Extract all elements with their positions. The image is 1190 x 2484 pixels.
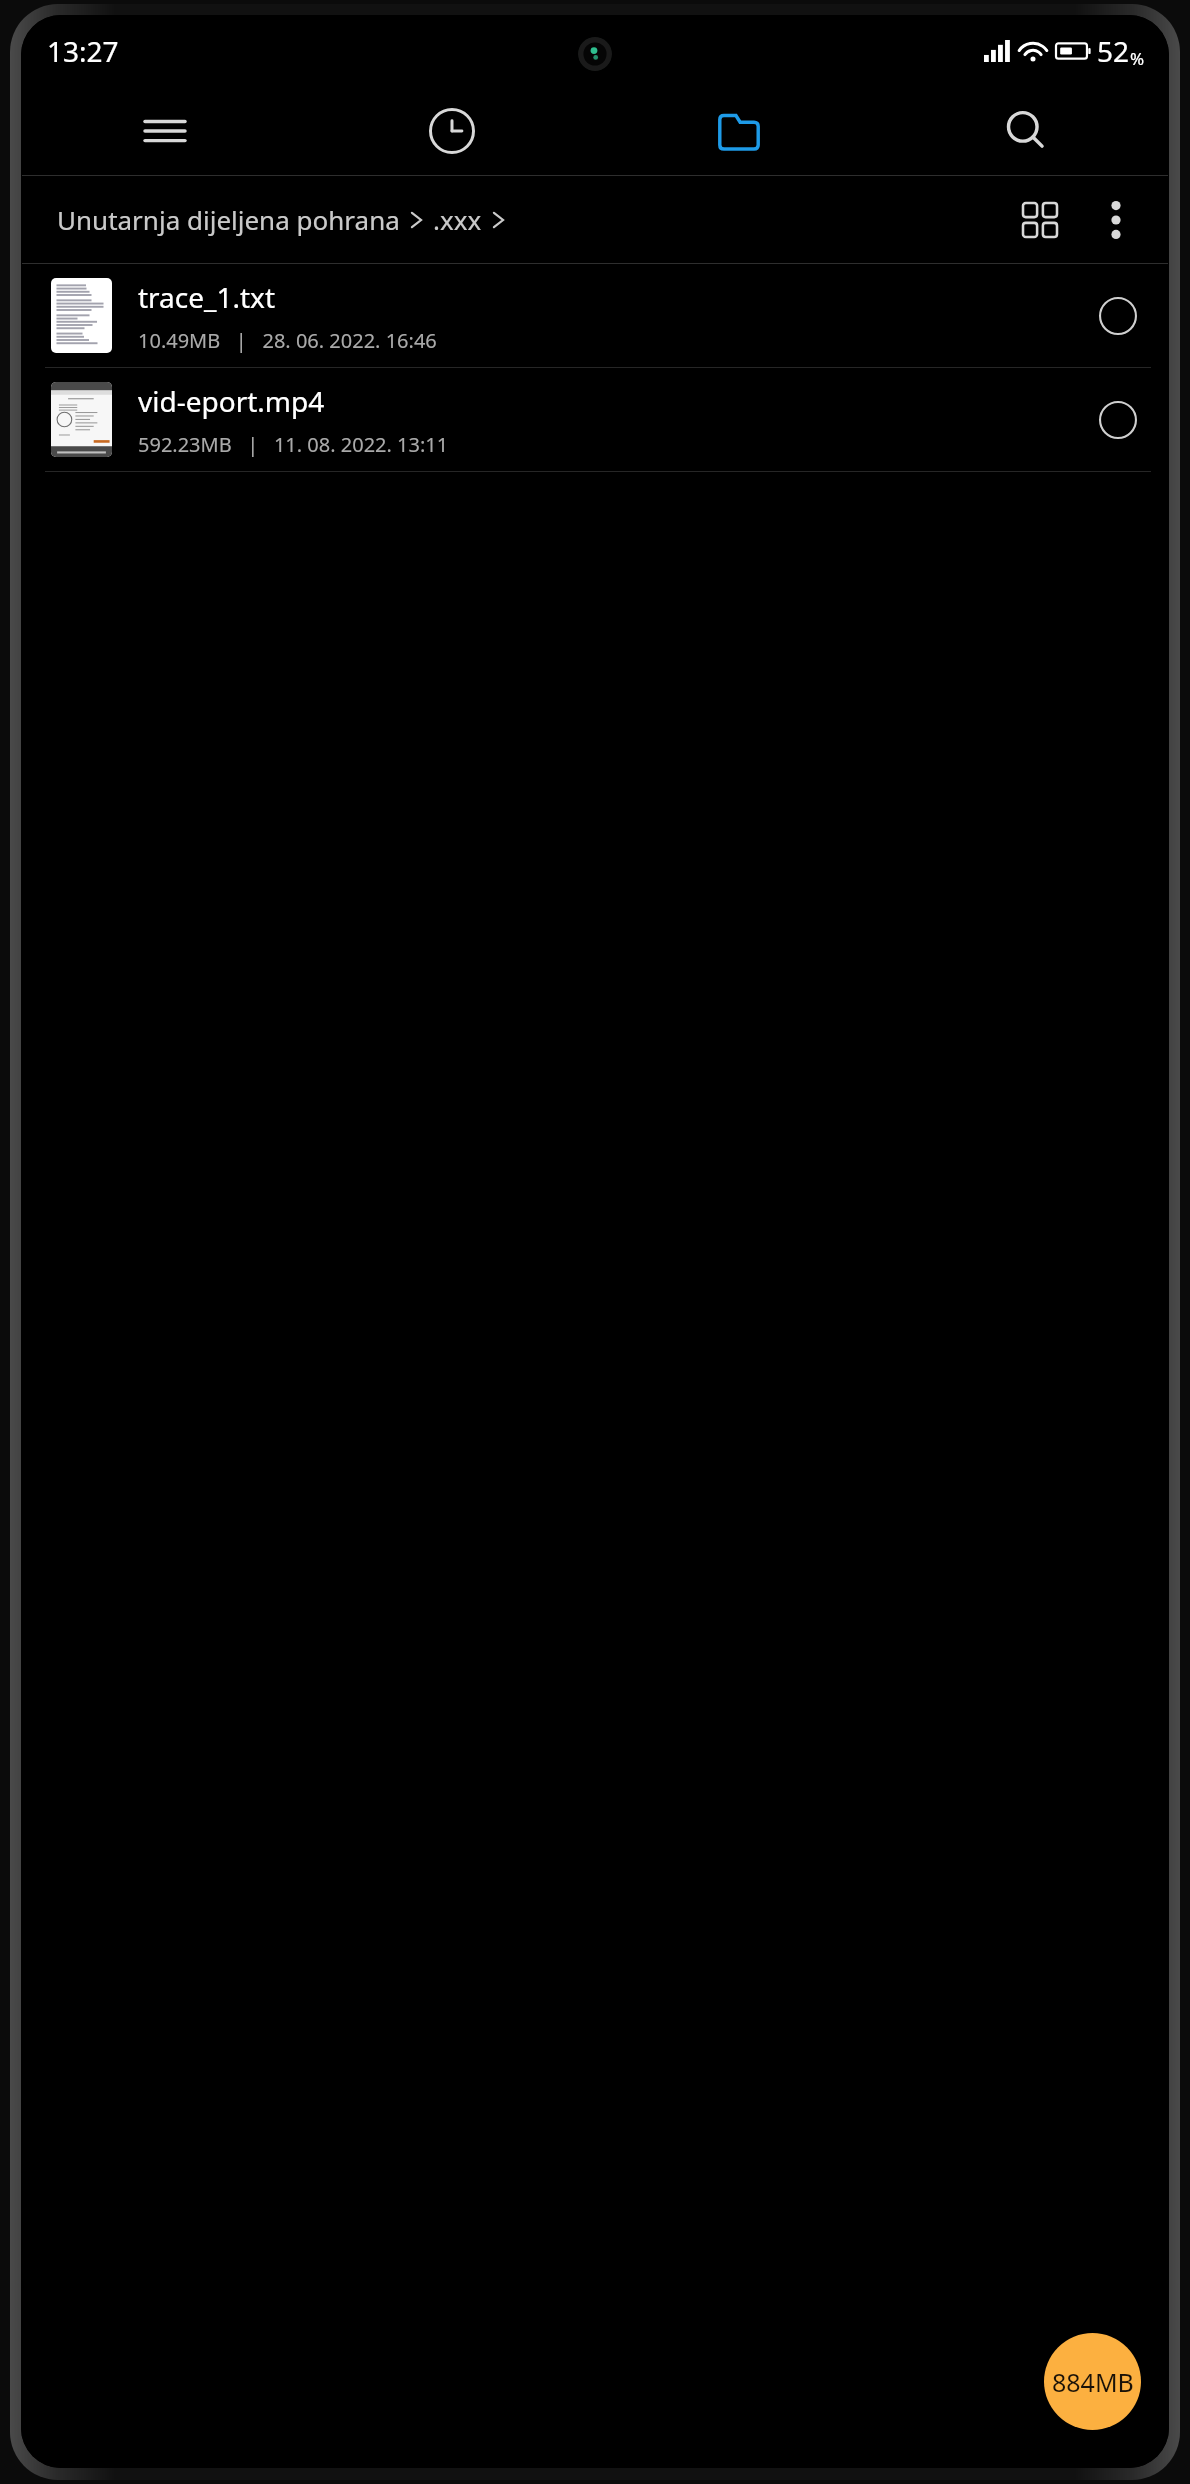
button[interactable]: Unutarnja dijeljena pohrana bbox=[57, 202, 505, 237]
staticText: 10.49MB | 28. 06. 2022. 16:46 bbox=[138, 327, 437, 354]
button[interactable]: Select trace_1.txt bbox=[1081, 279, 1155, 353]
staticText: 592.23MB | 11. 08. 2022. 13:11 bbox=[138, 431, 449, 458]
button[interactable]: Recent bbox=[308, 87, 595, 175]
staticText: % bbox=[1130, 47, 1145, 70]
button[interactable]: Search bbox=[882, 87, 1169, 175]
button[interactable]: Files bbox=[595, 87, 882, 175]
button[interactable]: trace_1.txt bbox=[21, 264, 1169, 367]
button[interactable]: More options bbox=[1083, 187, 1149, 253]
button[interactable]: Grid view bbox=[1007, 187, 1073, 253]
button[interactable]: Select vid-eport.mp4 bbox=[1081, 383, 1155, 457]
staticText: 884MB bbox=[1052, 2365, 1134, 2399]
button[interactable]: Menu bbox=[21, 87, 308, 175]
staticText: .xxx bbox=[433, 202, 482, 237]
staticText: trace_1.txt bbox=[138, 278, 276, 316]
staticText: vid-eport.mp4 bbox=[138, 382, 325, 420]
staticText: 13:27 bbox=[47, 32, 119, 70]
staticText: Unutarnja dijeljena pohrana bbox=[57, 202, 400, 237]
button[interactable]: 884MB bbox=[1044, 2333, 1141, 2430]
button[interactable]: vid-eport.mp4 bbox=[21, 368, 1169, 471]
staticText: 52 bbox=[1097, 32, 1130, 70]
